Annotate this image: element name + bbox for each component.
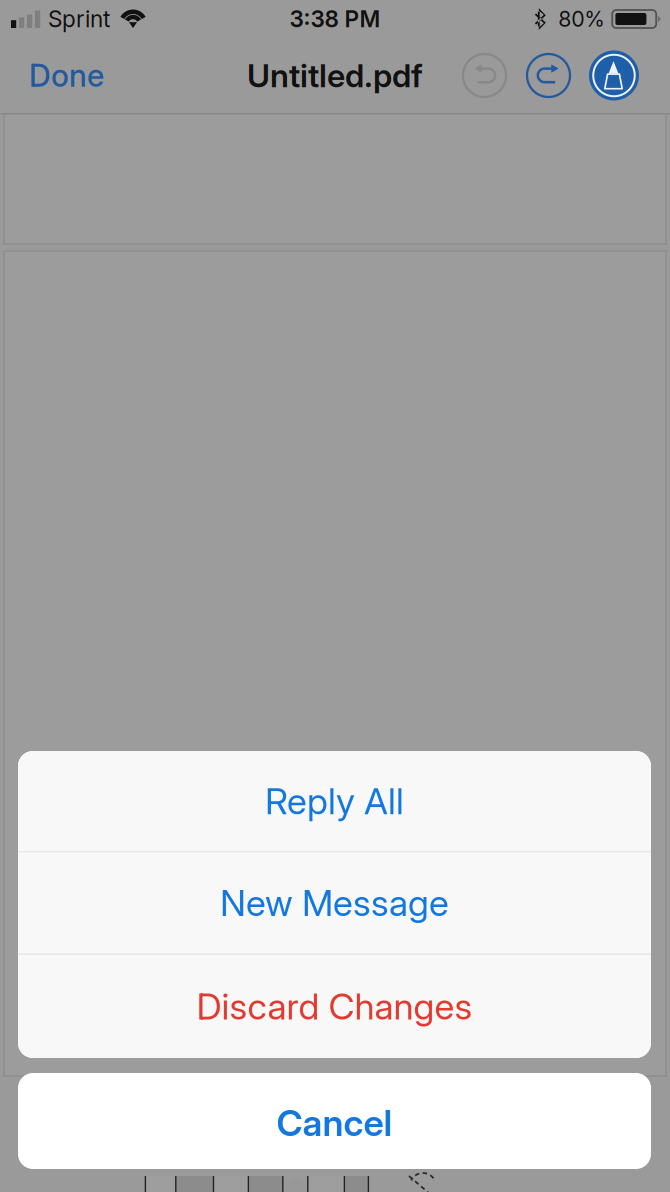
button[interactable]: Done — [0, 41, 120, 109]
button[interactable]: Undo — [463, 41, 506, 109]
button[interactable]: Markup tools — [589, 41, 639, 109]
staticText: 80% — [558, 6, 605, 32]
staticText: Untitled.pdf — [247, 56, 423, 95]
staticText: New Message — [220, 881, 449, 925]
staticText: Reply All — [265, 779, 404, 823]
staticText: Discard Changes — [196, 985, 472, 1028]
staticText: Sprint — [48, 5, 110, 33]
staticText: Done — [29, 57, 104, 94]
button[interactable]: New Message — [18, 852, 651, 953]
staticText: 3:38 PM — [289, 5, 380, 33]
button[interactable]: Discard Changes — [18, 955, 651, 1058]
button[interactable]: Cancel — [18, 1073, 651, 1169]
staticText: Cancel — [276, 1101, 392, 1145]
button[interactable]: Reply All — [18, 751, 651, 851]
button[interactable]: Redo — [527, 41, 570, 109]
